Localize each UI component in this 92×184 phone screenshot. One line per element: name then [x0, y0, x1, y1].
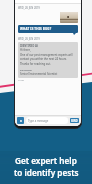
staticText: WED, 26 JUN 2019 — [18, 37, 40, 41]
button[interactable]: Attach photo — [17, 117, 24, 124]
staticText: Thanks for reaching out. — [20, 62, 51, 66]
button[interactable] — [60, 12, 78, 23]
staticText: Senior Environmental Scientist — [20, 72, 58, 76]
staticText: WED, 26 JUN 2019 — [18, 6, 40, 10]
staticText: One of our pest management experts will … — [20, 53, 76, 60]
staticText: to identify pests — [14, 167, 79, 178]
button[interactable]: IDENTIFIED AS — [18, 42, 78, 78]
staticText: SEND — [71, 119, 78, 122]
button[interactable]: WHAT IS THIS BUG? — [18, 25, 78, 33]
staticText: POSITION — [20, 68, 32, 71]
staticText: Type a message — [28, 119, 49, 123]
staticText: IDENTIFIED AS — [20, 44, 38, 47]
button[interactable]: SEND — [70, 118, 79, 123]
staticText: Hi there, — [20, 48, 31, 52]
staticText: 17:42 — [18, 79, 24, 82]
button[interactable]: Type a message — [26, 117, 68, 124]
staticText: WHAT IS THIS BUG? — [20, 27, 52, 31]
staticText: Get expert help — [15, 155, 77, 166]
